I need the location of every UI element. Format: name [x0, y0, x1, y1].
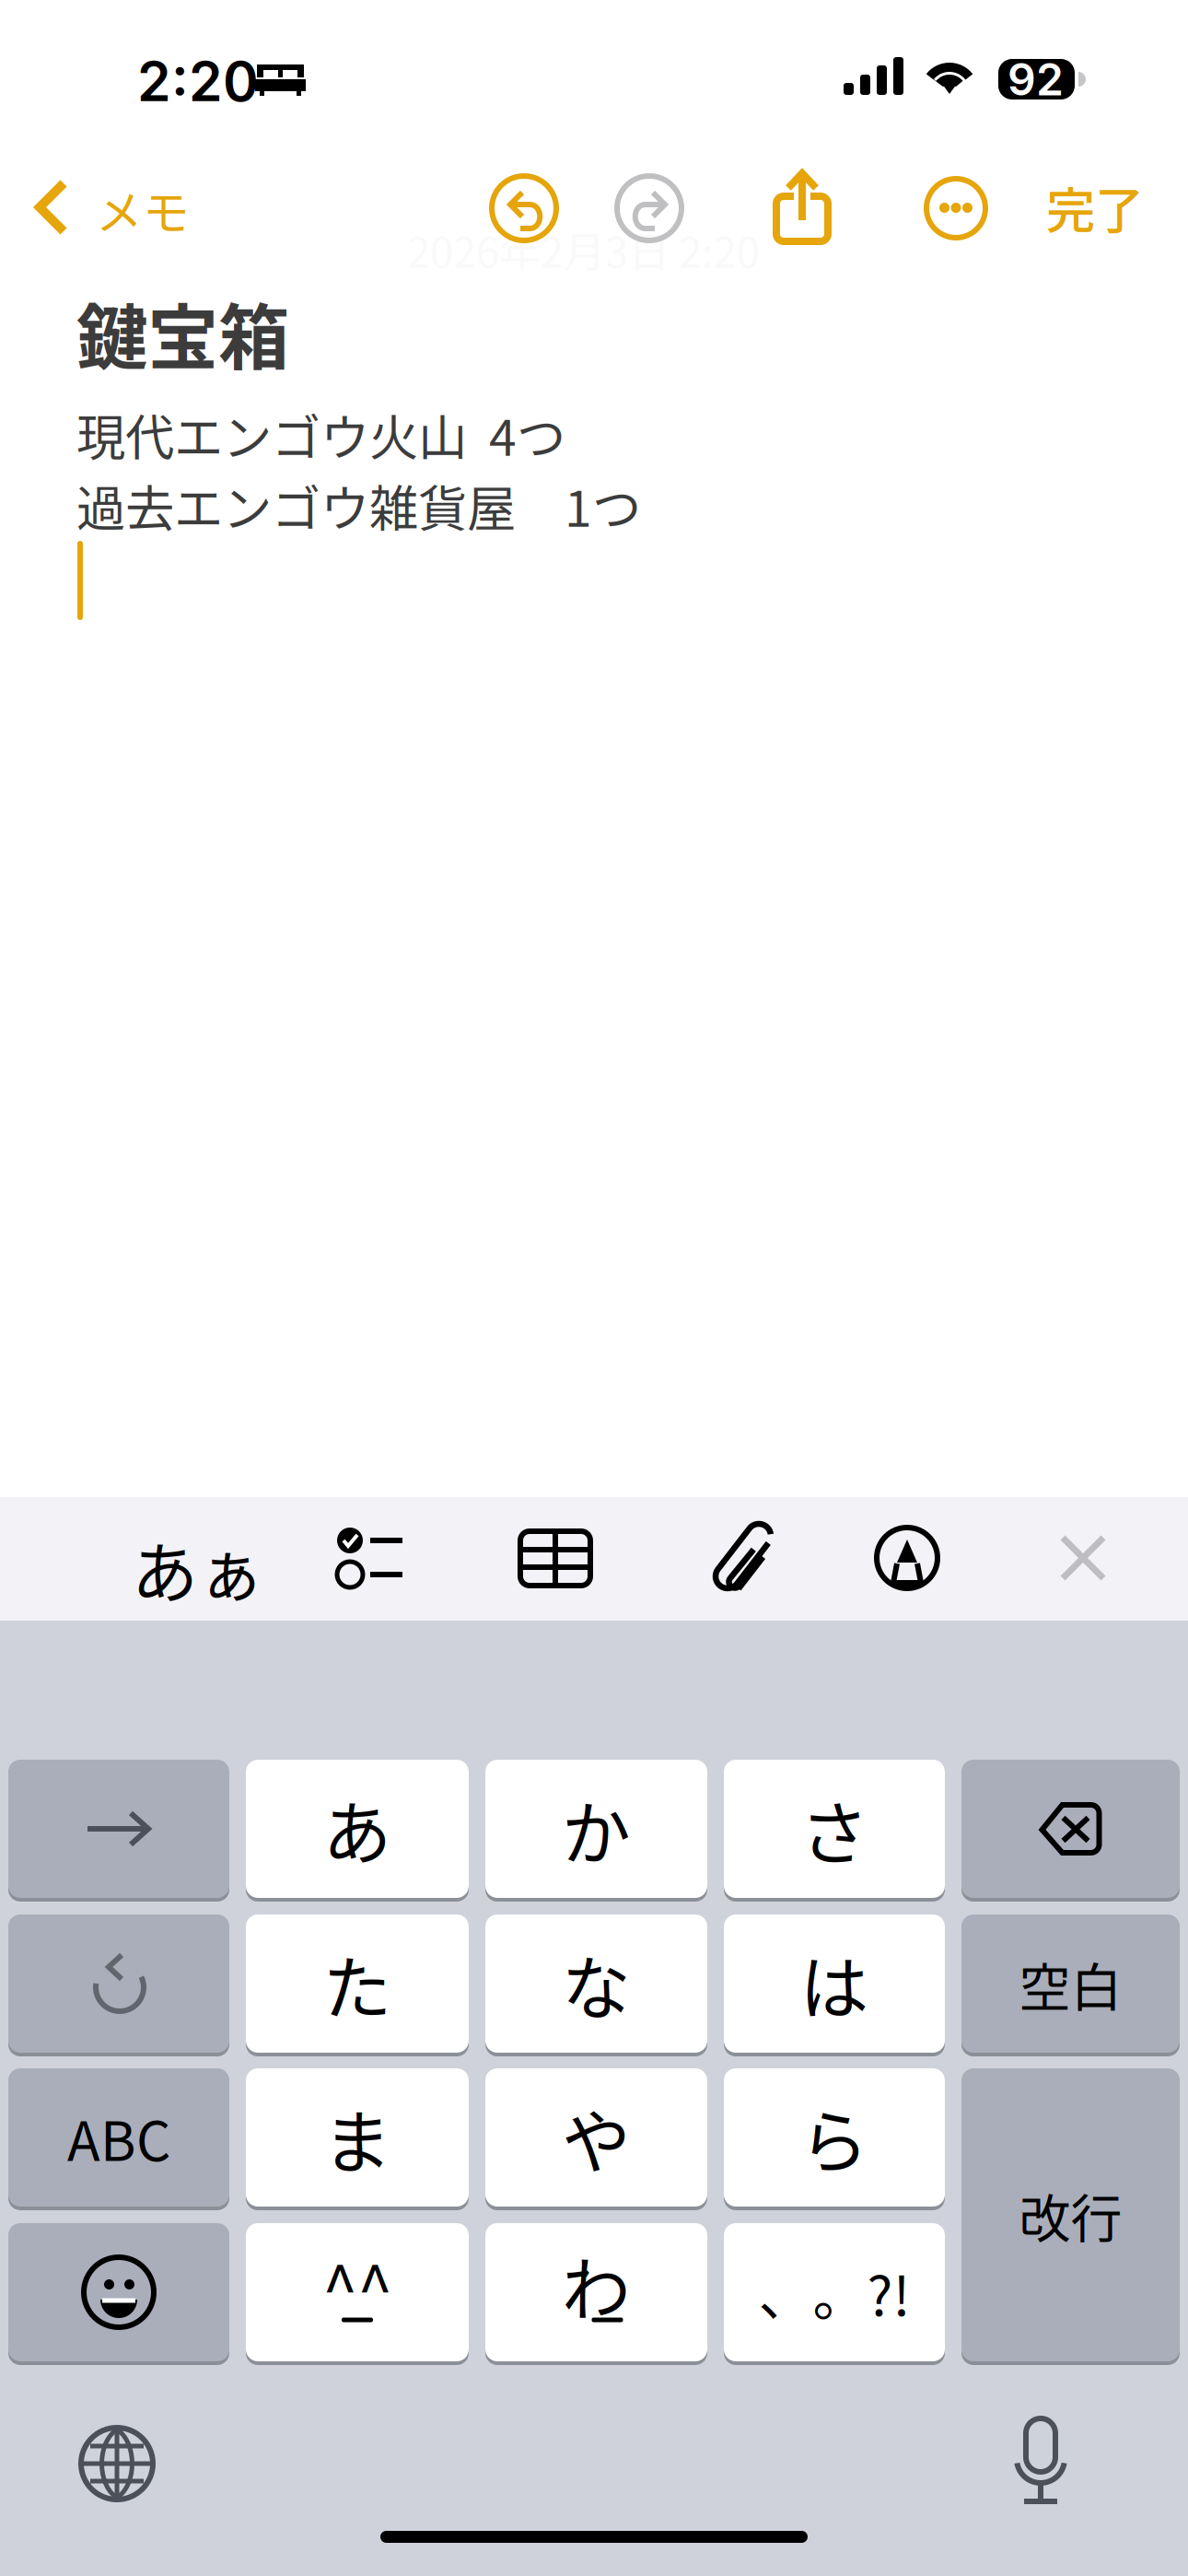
staticText: 92	[1007, 53, 1064, 106]
button[interactable]: Attach file	[700, 1519, 781, 1598]
staticText: や	[562, 2088, 631, 2187]
button[interactable]	[485, 2068, 707, 2212]
staticText: 2:20	[137, 49, 259, 114]
staticText: 鍵宝箱	[76, 281, 289, 384]
button[interactable]: Delete	[961, 1760, 1180, 1903]
button[interactable]	[8, 2068, 229, 2212]
button[interactable]	[961, 1914, 1180, 2058]
button[interactable]	[724, 1914, 945, 2058]
button[interactable]: メモ	[18, 164, 212, 251]
staticText: な	[562, 1934, 631, 2033]
staticText: 現代エンゴウ火山 4つ	[76, 399, 565, 470]
button[interactable]: More options	[926, 179, 985, 238]
staticText: ら	[800, 2088, 869, 2187]
staticText: あぁ	[132, 1520, 264, 1616]
staticText: 完了	[1046, 172, 1144, 243]
button[interactable]: Markup	[877, 1528, 938, 1588]
staticText: 過去エンゴウ雑貨屋 1つ	[76, 470, 641, 541]
button[interactable]	[246, 2223, 469, 2367]
staticText: 2026年2月3日 2:20	[407, 219, 760, 280]
staticText: さ	[800, 1779, 869, 1879]
staticText: は	[800, 1934, 869, 2033]
staticText: 改行	[1019, 2178, 1122, 2252]
button[interactable]: Share	[774, 169, 833, 246]
staticText: 空白	[1019, 1946, 1122, 2021]
button[interactable]	[724, 1760, 945, 1903]
button[interactable]	[961, 2068, 1180, 2367]
button[interactable]: Switch keyboard	[81, 2428, 155, 2501]
button[interactable]	[246, 2068, 469, 2212]
staticText: ^^	[322, 2239, 392, 2331]
button[interactable]: Hide keyboard	[1060, 1535, 1106, 1581]
staticText: ABC	[67, 2098, 170, 2177]
button[interactable]: Undo	[8, 1914, 229, 2058]
button[interactable]: Undo	[489, 173, 559, 243]
button[interactable]	[246, 1914, 469, 2058]
button[interactable]	[485, 2223, 707, 2367]
staticText: か	[562, 1779, 631, 1879]
staticText: メモ	[96, 176, 190, 244]
button[interactable]: Checklist	[337, 1528, 402, 1587]
button[interactable]: あぁ	[132, 1520, 297, 1612]
button[interactable]	[246, 1760, 469, 1903]
button[interactable]	[724, 2068, 945, 2212]
button[interactable]	[724, 2223, 945, 2367]
button[interactable]: Emoji	[8, 2223, 229, 2367]
button[interactable]: 完了	[1046, 179, 1184, 236]
staticText: わ	[562, 2235, 631, 2335]
button[interactable]: Dictation	[1011, 2418, 1070, 2505]
staticText: あ	[323, 1779, 392, 1879]
staticText: 、。?!	[758, 2253, 910, 2331]
button[interactable]: Table	[520, 1531, 590, 1586]
button[interactable]	[485, 1914, 707, 2058]
staticText: た	[323, 1934, 392, 2033]
button[interactable]: Redo	[614, 173, 684, 243]
button[interactable]	[485, 1760, 707, 1903]
button[interactable]: Next candidate	[8, 1760, 229, 1903]
staticText: ま	[323, 2088, 392, 2187]
